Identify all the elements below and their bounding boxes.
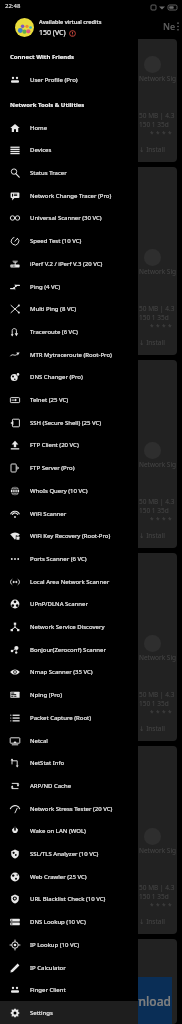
button[interactable]: Nping (Pro) <box>0 683 138 706</box>
staticText: NetStat Info <box>30 759 65 767</box>
staticText: * <box>168 515 172 524</box>
staticText: Telnet (25 VC) <box>30 396 69 404</box>
staticText: 50 MB | 4.3 <box>139 690 175 699</box>
staticText: 50 MB | 4.3 <box>139 111 175 120</box>
staticText: 50 MB | 4.3 <box>139 304 175 313</box>
staticText: WiFi Scanner <box>30 510 67 518</box>
staticText: * <box>156 322 160 331</box>
staticText: ↓ Install <box>139 531 165 540</box>
button[interactable]: WhoIs Query (10 VC) <box>0 479 138 502</box>
button[interactable]: Network Sig <box>5 39 177 162</box>
staticText: 150 1 35d <box>139 313 169 322</box>
staticText: Nping (Pro) <box>30 691 62 699</box>
button[interactable]: Bonjour(Zeroconf) Scanner <box>0 638 138 661</box>
staticText: Network Sig <box>139 846 177 855</box>
staticText: 22:48 <box>5 2 21 10</box>
button[interactable]: Download <box>111 977 172 1024</box>
button[interactable]: Netcal <box>0 729 138 752</box>
button[interactable]: Finger Client <box>0 978 138 1001</box>
button[interactable]: Network Stress Tester (20 VC) <box>0 797 138 820</box>
staticText: Network Sig <box>139 74 177 83</box>
button[interactable]: Network Sig <box>5 167 177 355</box>
staticText: Network Sig <box>139 267 177 276</box>
staticText: * <box>150 515 154 524</box>
staticText: URL Blacklist Check (10 VC) <box>30 895 106 903</box>
button[interactable]: Local Area Network Scanner <box>0 570 138 593</box>
button[interactable]: Available virtual credits <box>15 11 138 44</box>
staticText: IP Calculator <box>30 964 66 972</box>
button[interactable]: Multi Ping (8 VC) <box>0 297 138 320</box>
button[interactable]: iPerf V.2 / iPerf V.3 (20 VC) <box>0 252 138 275</box>
button[interactable]: DNS Lookup (10 VC) <box>0 910 138 933</box>
button[interactable]: IP Calculator <box>0 956 138 979</box>
button[interactable]: URL Blacklist Check (10 VC) <box>0 887 138 910</box>
staticText: Bonjour(Zeroconf) Scanner <box>30 646 106 654</box>
staticText: 150 1 35d <box>139 699 169 708</box>
staticText: Network Service Discovery <box>30 623 105 631</box>
button[interactable]: IP Lookup (10 VC) <box>0 933 138 956</box>
staticText: 50 MB | 4.3 <box>139 883 175 892</box>
button[interactable]: Network Service Discovery <box>0 615 138 638</box>
staticText: Nmap Scanner (35 VC) <box>30 668 93 676</box>
button[interactable]: FTP Server (Pro) <box>0 456 138 479</box>
staticText: * <box>162 322 166 331</box>
staticText: Download <box>113 993 171 1009</box>
button[interactable]: Home <box>0 116 138 139</box>
button[interactable]: SSH (Secure Shell) (25 VC) <box>0 411 138 434</box>
button[interactable]: ARP/ND Cache <box>0 774 138 797</box>
staticText: Network Tools & Utilities <box>10 101 85 109</box>
staticText: Local Area Network Scanner <box>30 578 110 586</box>
button[interactable]: User Profile (Pro) <box>0 68 138 91</box>
button[interactable]: DNS Changer (Pro) <box>0 365 138 388</box>
staticText: ↓ Install <box>139 917 165 926</box>
staticText: Web Crawler (25 VC) <box>30 873 87 881</box>
button[interactable]: UPnP/DLNA Scanner <box>0 592 138 615</box>
button[interactable]: Devices <box>0 138 138 161</box>
button[interactable]: Packet Capture (Root) <box>0 706 138 729</box>
staticText: DNS Lookup (10 VC) <box>30 918 86 926</box>
staticText: * <box>150 901 154 910</box>
button[interactable]: Network Sig <box>5 553 177 741</box>
staticText: 150 1 35d <box>139 892 169 901</box>
button[interactable]: Traceroute (6 VC) <box>0 320 138 343</box>
staticText: Devices <box>30 146 52 154</box>
button[interactable]: WiFi Scanner <box>0 502 138 525</box>
staticText: Network Change Tracer (Pro) <box>30 192 112 200</box>
button[interactable]: Nmap Scanner (35 VC) <box>0 660 138 683</box>
staticText: WhoIs Query (10 VC) <box>30 487 88 495</box>
staticText: ↓ Install <box>139 145 165 154</box>
button[interactable]: FTP Client (20 VC) <box>0 433 138 456</box>
button[interactable]: Network Sig <box>5 939 177 1024</box>
button[interactable]: NetStat Info <box>0 751 138 774</box>
staticText: Netcal <box>30 737 48 745</box>
staticText: Network Tools <box>163 20 178 32</box>
staticText: UPnP/DLNA Scanner <box>30 600 88 608</box>
staticText: Network Sig <box>139 460 177 469</box>
button[interactable]: Speed Test (10 VC) <box>0 229 138 252</box>
button[interactable]: WiFi Key Recovery (Root-Pro) <box>0 524 138 547</box>
button[interactable]: Web Crawler (25 VC) <box>0 865 138 888</box>
button[interactable]: Status Tracer <box>0 161 138 184</box>
button[interactable]: Settings <box>0 1001 138 1024</box>
button[interactable]: Network Sig <box>5 360 177 548</box>
button[interactable]: Ports Scanner (6 VC) <box>0 547 138 570</box>
button[interactable]: Network Change Tracer (Pro) <box>0 184 138 207</box>
staticText: Speed Test (10 VC) <box>30 237 82 245</box>
button[interactable]: SSL/TLS Analyzer (10 VC) <box>0 842 138 865</box>
staticText: Wake on LAN (WOL) <box>30 827 86 835</box>
staticText: 150 1 35d <box>139 506 169 515</box>
staticText: FTP Client (20 VC) <box>30 441 79 449</box>
button[interactable]: MTR Mytraceroute (Root-Pro) <box>0 343 138 366</box>
staticText: * <box>168 322 172 331</box>
button[interactable]: Network Sig <box>5 746 177 934</box>
staticText: * <box>150 129 154 138</box>
staticText: Connect With Friends <box>10 53 74 61</box>
button[interactable]: Wake on LAN (WOL) <box>0 819 138 842</box>
staticText: Ping (4 VC) <box>30 283 61 291</box>
button[interactable]: Ping (4 VC) <box>0 275 138 298</box>
button[interactable]: Universal Scanner (30 VC) <box>0 206 138 229</box>
staticText: * <box>168 901 172 910</box>
button[interactable]: Telnet (25 VC) <box>0 388 138 411</box>
staticText: ARP/ND Cache <box>30 782 72 790</box>
staticText: Finger Client <box>30 986 66 994</box>
